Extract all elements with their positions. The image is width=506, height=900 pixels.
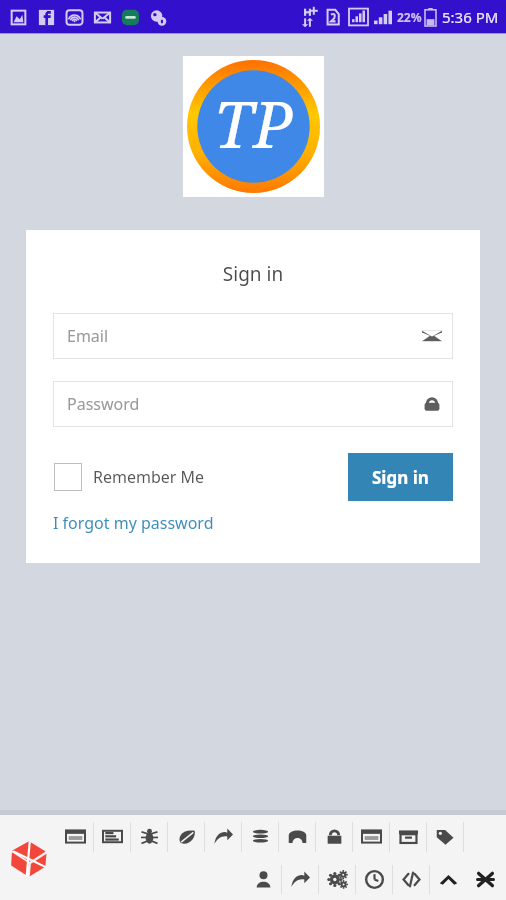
button[interactable]: Email xyxy=(53,313,453,359)
staticText: TP xyxy=(214,80,293,167)
button[interactable]: Session xyxy=(353,815,390,858)
button[interactable]: Collapse xyxy=(430,859,467,900)
button[interactable]: Password xyxy=(53,381,453,427)
staticText: Sign in xyxy=(53,261,453,287)
button[interactable]: Remember Me xyxy=(53,458,206,496)
button[interactable]: User xyxy=(245,859,282,900)
button[interactable]: Models xyxy=(427,815,464,858)
staticText: 22% xyxy=(397,9,422,25)
button[interactable]: Exceptions xyxy=(131,815,168,858)
button[interactable]: Views xyxy=(168,815,205,858)
staticText: Remember Me xyxy=(93,466,205,488)
button[interactable]: Redirect xyxy=(282,859,319,900)
button[interactable]: Mails xyxy=(279,815,316,858)
staticText: 5:36 PM xyxy=(442,7,499,27)
staticText: Password xyxy=(67,393,140,415)
button[interactable]: Sign in xyxy=(348,453,453,501)
button[interactable]: Queries xyxy=(242,815,279,858)
button[interactable]: Close xyxy=(467,859,504,900)
staticText: Email xyxy=(67,325,109,347)
button[interactable]: Request xyxy=(94,815,131,858)
button[interactable]: Route xyxy=(205,815,242,858)
button[interactable]: Source xyxy=(393,859,430,900)
button[interactable]: Messages xyxy=(57,815,94,858)
button[interactable]: Timeline xyxy=(356,859,393,900)
button[interactable]: I forgot my password xyxy=(53,510,214,536)
button[interactable]: Settings xyxy=(319,859,356,900)
button[interactable]: Laravel Debugbar xyxy=(6,835,52,881)
button[interactable]: Cache xyxy=(390,815,427,858)
staticText: I forgot my password xyxy=(53,512,214,534)
button[interactable]: Auth xyxy=(316,815,353,858)
staticText: Sign in xyxy=(372,466,429,489)
